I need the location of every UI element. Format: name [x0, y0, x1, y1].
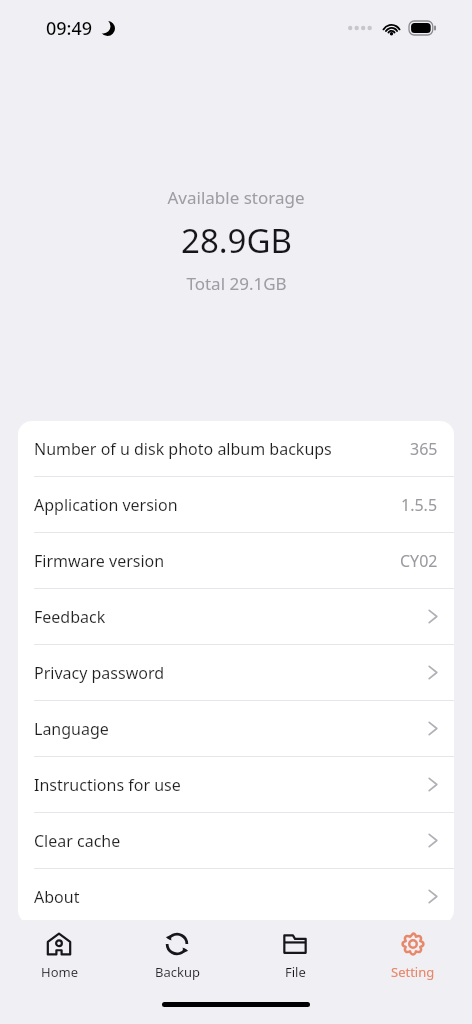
button[interactable]: Firmware version: [18, 533, 454, 588]
other: File: [282, 931, 308, 957]
button[interactable]: Backup: [118, 920, 236, 992]
button[interactable]: Application version: [18, 477, 454, 532]
staticText: 1.5.5: [401, 494, 438, 516]
staticText: Available storage: [167, 186, 305, 209]
button[interactable]: Feedback: [18, 589, 454, 644]
other: Backup: [164, 931, 190, 957]
button[interactable]: Privacy password: [18, 645, 454, 700]
staticText: Firmware version: [34, 550, 400, 572]
button[interactable]: Clear cache: [18, 813, 454, 868]
button[interactable]: Setting: [354, 920, 472, 992]
staticText: Clear cache: [34, 830, 428, 852]
button[interactable]: Home: [0, 920, 118, 992]
staticText: Total 29.1GB: [186, 272, 287, 295]
staticText: Backup: [155, 963, 200, 981]
staticText: Language: [34, 718, 428, 740]
staticText: Number of u disk photo album backups: [34, 438, 410, 460]
button[interactable]: About: [18, 869, 454, 924]
staticText: Privacy password: [34, 662, 428, 684]
staticText: Feedback: [34, 606, 428, 628]
staticText: Application version: [34, 494, 401, 516]
button[interactable]: Instructions for use: [18, 757, 454, 812]
staticText: 365: [410, 438, 438, 460]
staticText: CY02: [400, 550, 438, 572]
other: Setting: [400, 931, 426, 957]
button[interactable]: File: [236, 920, 354, 992]
staticText: File: [285, 963, 306, 981]
other: Home: [46, 931, 72, 957]
button[interactable]: Language: [18, 701, 454, 756]
staticText: Home: [41, 963, 78, 981]
staticText: 28.9GB: [181, 218, 292, 263]
staticText: Setting: [391, 963, 435, 981]
staticText: About: [34, 886, 428, 908]
staticText: Instructions for use: [34, 774, 428, 796]
button[interactable]: Number of u disk photo album backups: [18, 421, 454, 476]
staticText: 09:49: [46, 16, 93, 41]
